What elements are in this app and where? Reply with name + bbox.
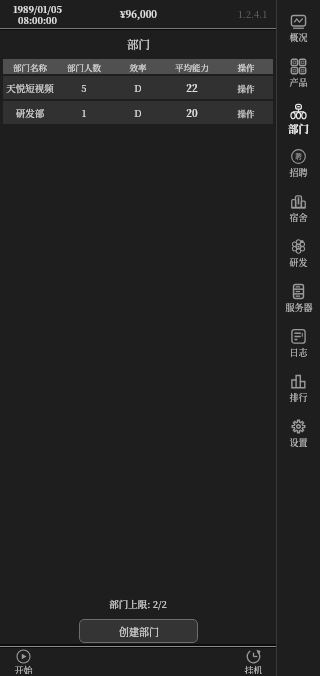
staticText: 服务器 — [285, 301, 313, 314]
staticText: 产品 — [289, 76, 308, 89]
button[interactable]: 挂机 — [238, 648, 268, 676]
staticText: 日志 — [289, 346, 308, 359]
staticText: 宿舍 — [289, 211, 308, 224]
button[interactable]: 宿舍 — [277, 189, 320, 234]
button[interactable]: 研发 — [277, 234, 320, 279]
staticText: 20 — [165, 106, 219, 120]
button[interactable]: 操作 — [219, 101, 273, 124]
staticText: 5 — [57, 81, 111, 95]
staticText: 1 — [57, 106, 111, 120]
staticText: 创建部门 — [119, 624, 159, 638]
staticText: 效率 — [111, 61, 165, 73]
button[interactable]: 聘 — [277, 144, 320, 189]
staticText: 设置 — [289, 436, 308, 449]
staticText: 平均能力 — [165, 61, 219, 73]
staticText: 研发部 — [3, 106, 57, 120]
staticText: D — [111, 81, 165, 95]
staticText: 概况 — [289, 31, 308, 44]
staticText: 开始 — [14, 664, 33, 674]
button[interactable]: 操作 — [219, 76, 273, 99]
staticText: 部门名称 — [3, 61, 57, 73]
staticText: 操作 — [219, 61, 273, 73]
staticText: 操作 — [237, 107, 255, 119]
button[interactable]: 服务器 — [277, 279, 320, 324]
staticText: 挂机 — [244, 664, 263, 674]
staticText: 1989/01/05 08:00:00 — [13, 2, 62, 27]
staticText: 排行 — [289, 391, 308, 404]
button[interactable]: 概况 — [277, 9, 320, 54]
button[interactable]: 排行 — [277, 369, 320, 414]
button[interactable]: 创建部门 — [79, 619, 198, 643]
staticText: 操作 — [237, 82, 255, 94]
button[interactable]: 产品 — [277, 54, 320, 99]
staticText: 部门 — [127, 36, 150, 53]
button[interactable]: 设置 — [277, 414, 320, 459]
button[interactable]: 日志 — [277, 324, 320, 369]
staticText: ¥96,000 — [120, 7, 157, 21]
staticText: 聘 — [295, 152, 302, 161]
button[interactable]: 部门 — [277, 99, 320, 144]
staticText: 研发 — [289, 256, 308, 269]
staticText: 22 — [165, 81, 219, 95]
staticText: 1.2.4.1 — [238, 7, 267, 21]
staticText: 部门上限: 2/2 — [0, 597, 276, 611]
staticText: D — [111, 106, 165, 120]
staticText: 部门人数 — [57, 61, 111, 73]
staticText: 天悦短视频 — [3, 81, 57, 95]
staticText: 部门 — [288, 121, 309, 136]
staticText: 招聘 — [289, 166, 308, 179]
button[interactable]: 开始 — [8, 648, 38, 676]
